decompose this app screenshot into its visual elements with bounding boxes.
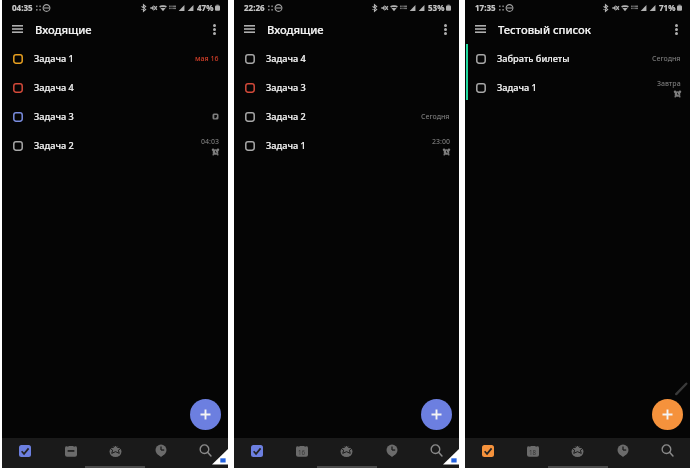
button[interactable]: Toggle Задача 1 [476, 83, 486, 93]
staticText: Задача 2 [34, 139, 74, 152]
staticText: Задача 4 [266, 52, 306, 65]
button[interactable]: Open navigation menu [8, 20, 26, 38]
button[interactable]: Tasks [465, 438, 510, 463]
button[interactable]: Toggle Задача 4 [2, 73, 228, 102]
button[interactable]: More options [667, 20, 685, 38]
button[interactable]: Open navigation menu [240, 20, 258, 38]
staticText: 04:03 [201, 137, 219, 147]
button[interactable]: Toggle Задача 1 [13, 54, 23, 64]
staticText: Задача 1 [34, 52, 74, 65]
button[interactable]: Toggle Задача 1 [2, 44, 228, 73]
staticText: мая 16 [195, 54, 219, 64]
button[interactable]: Toggle Задача 3 [13, 112, 23, 122]
button[interactable]: Open navigation menu [471, 20, 489, 38]
button[interactable]: Search [645, 438, 690, 463]
button[interactable]: Toggle Задача 3 [234, 73, 459, 102]
button[interactable]: Toggle Задача 1 [245, 141, 255, 151]
button[interactable]: Projects [324, 438, 369, 463]
button[interactable]: Toggle Задача 3 [2, 102, 228, 131]
button[interactable]: Toggle Задача 4 [245, 54, 255, 64]
button[interactable]: Projects [93, 438, 138, 463]
staticText: Тестовый список [498, 22, 592, 37]
staticText: 47% [197, 2, 214, 13]
button[interactable]: Toggle Задача 2 [245, 112, 255, 122]
staticText: 23:00 [432, 137, 450, 147]
staticText: Входящие [35, 22, 92, 37]
button[interactable]: Toggle Задача 2 [2, 131, 228, 160]
staticText: Задача 1 [497, 81, 537, 94]
staticText: 04:35 [12, 2, 33, 13]
button[interactable]: Calendar [510, 438, 555, 463]
staticText: Завтра [657, 79, 681, 89]
staticText: Сегодня [421, 112, 450, 122]
staticText: 71% [659, 2, 676, 13]
button[interactable]: Toggle Задача 4 [234, 44, 459, 73]
button[interactable]: Tasks [2, 438, 48, 463]
button[interactable]: Toggle Задача 1 [234, 131, 459, 160]
button[interactable]: Places [138, 438, 183, 463]
button[interactable]: Add task [652, 399, 683, 430]
button[interactable]: Add task [190, 399, 221, 430]
button[interactable]: Toggle Задача 4 [13, 83, 23, 93]
button[interactable]: Toggle Задача 1 [465, 73, 690, 102]
staticText: 18 [529, 448, 537, 456]
staticText: Задача 2 [266, 110, 306, 123]
button[interactable]: Search [414, 438, 459, 463]
button[interactable]: Toggle Задача 2 [13, 141, 23, 151]
button[interactable]: Toggle Забрать билеты [465, 44, 690, 73]
staticText: 17:35 [475, 2, 496, 13]
staticText: Задача 3 [266, 81, 306, 94]
button[interactable]: Search [183, 438, 228, 463]
staticText: 22:26 [244, 2, 265, 13]
button[interactable]: Projects [555, 438, 600, 463]
button[interactable]: Toggle Забрать билеты [476, 54, 486, 64]
staticText: Задача 3 [34, 110, 74, 123]
staticText: Задача 4 [34, 81, 74, 94]
button[interactable]: More options [205, 20, 223, 38]
staticText: Забрать билеты [497, 52, 570, 65]
button[interactable]: Add task [421, 399, 452, 430]
button[interactable]: Calendar [279, 438, 324, 463]
button[interactable]: More options [436, 20, 454, 38]
button[interactable]: Places [600, 438, 645, 463]
staticText: Задача 1 [266, 139, 306, 152]
staticText: Входящие [267, 22, 324, 37]
staticText: 16 [298, 448, 306, 456]
staticText: Сегодня [652, 54, 681, 64]
button[interactable]: Places [369, 438, 414, 463]
button[interactable]: Calendar [48, 438, 93, 463]
staticText: 53% [428, 2, 445, 13]
button[interactable]: Toggle Задача 3 [245, 83, 255, 93]
button[interactable]: Tasks [234, 438, 279, 463]
button[interactable]: Toggle Задача 2 [234, 102, 459, 131]
